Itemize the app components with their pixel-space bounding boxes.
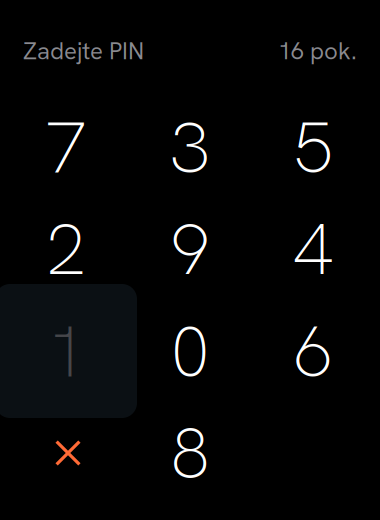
staticText: 9	[170, 202, 210, 296]
button[interactable]: 7	[0, 80, 137, 214]
staticText: 4	[293, 202, 333, 296]
button[interactable]: 3	[119, 80, 261, 214]
button[interactable]: 6	[242, 284, 380, 418]
staticText: 6	[293, 305, 333, 398]
button[interactable]: 8	[119, 385, 261, 519]
button[interactable]: 9	[119, 181, 261, 315]
staticText: 1	[46, 305, 86, 398]
button[interactable]: 0	[119, 284, 261, 418]
button[interactable]: 4	[242, 181, 380, 315]
button[interactable]: 1	[0, 284, 137, 418]
button[interactable]: 2	[0, 181, 137, 315]
staticText: 2	[46, 202, 86, 296]
staticText: 5	[293, 101, 333, 194]
button[interactable]: 5	[242, 80, 380, 214]
button[interactable]: Delete	[0, 385, 137, 519]
staticText: 3	[170, 101, 210, 194]
staticText: 7	[46, 101, 86, 194]
staticText: 0	[170, 305, 210, 398]
staticText: 8	[170, 406, 210, 500]
staticText: 16 pok.	[278, 35, 357, 67]
staticText: Zadejte PIN	[23, 35, 144, 67]
